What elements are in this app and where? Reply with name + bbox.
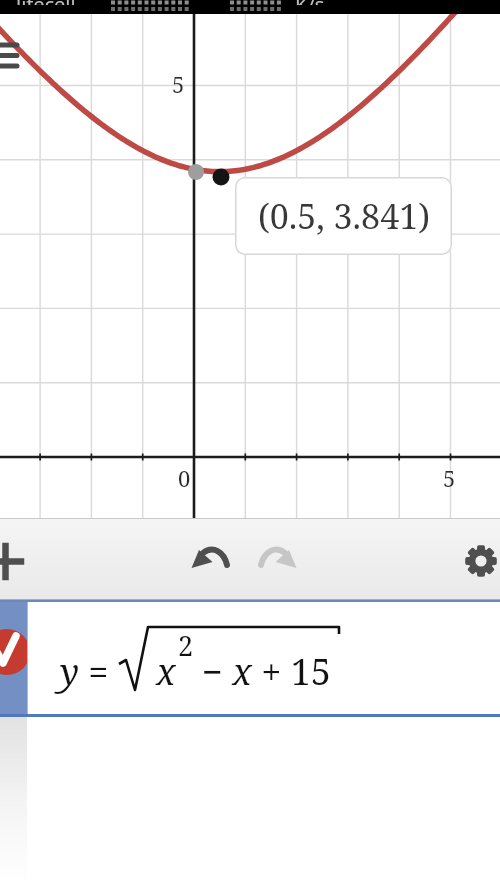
staticText: x [156,647,176,696]
button[interactable] [460,540,500,582]
button[interactable] [0,540,30,582]
button[interactable] [257,536,299,578]
button[interactable]: y = [0,600,500,717]
button[interactable]: (0.5, 3.841) [235,177,452,255]
staticText: (0.5, 3.841) [258,193,430,239]
staticText: 5 [443,463,456,493]
button[interactable] [189,536,231,578]
staticText: 5 [172,69,185,99]
staticText: 2 [178,627,194,664]
staticText: lifecell [16,0,76,5]
staticText: K/s [295,0,325,5]
staticText: y = [60,647,118,696]
staticText: − x + 15 [202,647,331,696]
staticText: 0 [178,463,191,493]
